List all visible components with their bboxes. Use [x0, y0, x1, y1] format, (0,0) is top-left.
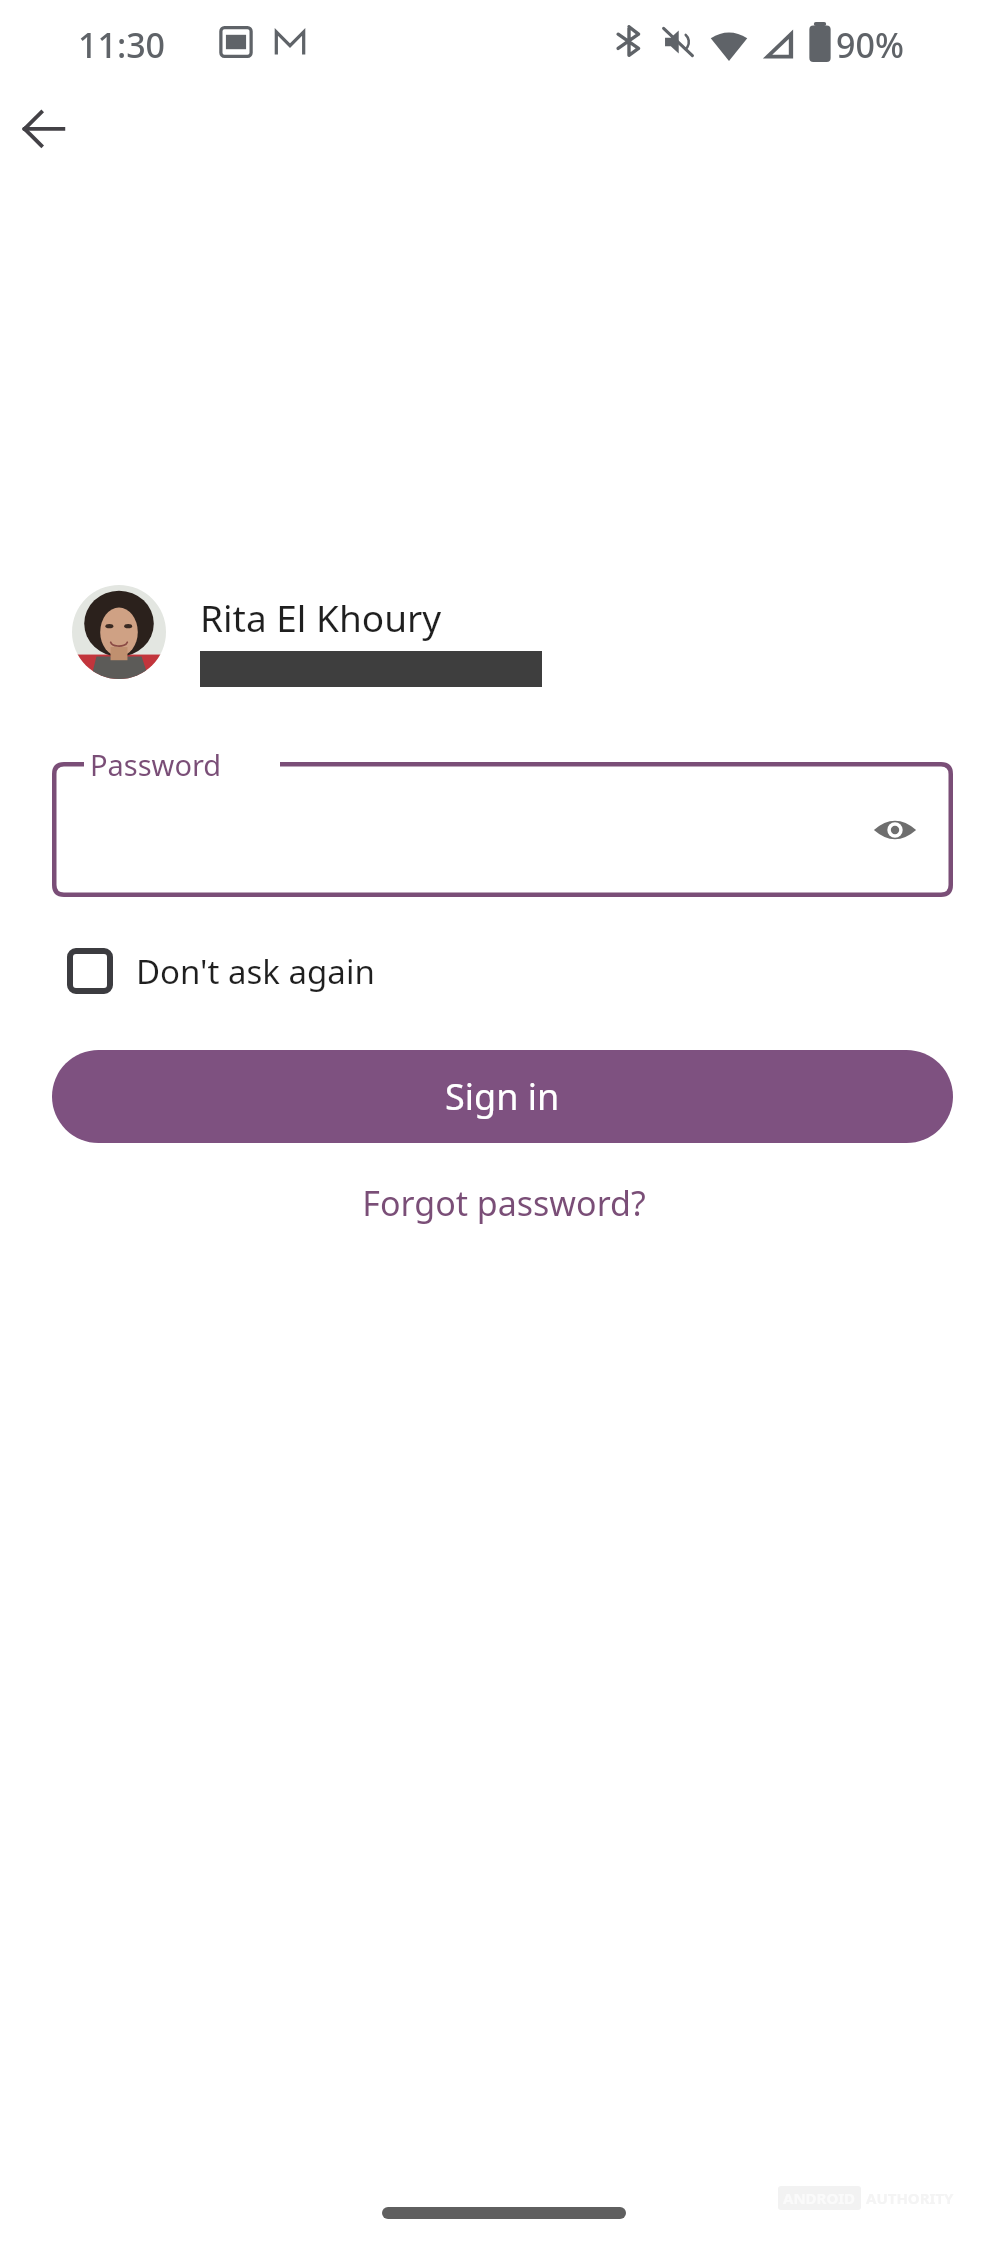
button[interactable]: Forgot password?	[344, 1168, 664, 1238]
button[interactable]: Sign in	[52, 1050, 953, 1143]
staticText: Rita El Khoury	[200, 592, 442, 642]
button[interactable]: Show password	[859, 794, 931, 866]
button[interactable]: Back	[6, 90, 82, 166]
staticText: 11:30	[78, 22, 166, 68]
staticText: Sign in	[445, 1072, 560, 1121]
staticText: 90%	[836, 22, 904, 68]
staticText: ANDROID	[783, 2188, 856, 2208]
staticText: Forgot password?	[362, 1180, 646, 1226]
staticText: AUTHORITY	[866, 2188, 954, 2208]
button[interactable]: Show password	[52, 762, 953, 897]
staticText: Don't ask again	[136, 949, 375, 994]
button[interactable]: Don't ask again	[46, 930, 395, 1012]
staticText: Password	[90, 745, 222, 784]
